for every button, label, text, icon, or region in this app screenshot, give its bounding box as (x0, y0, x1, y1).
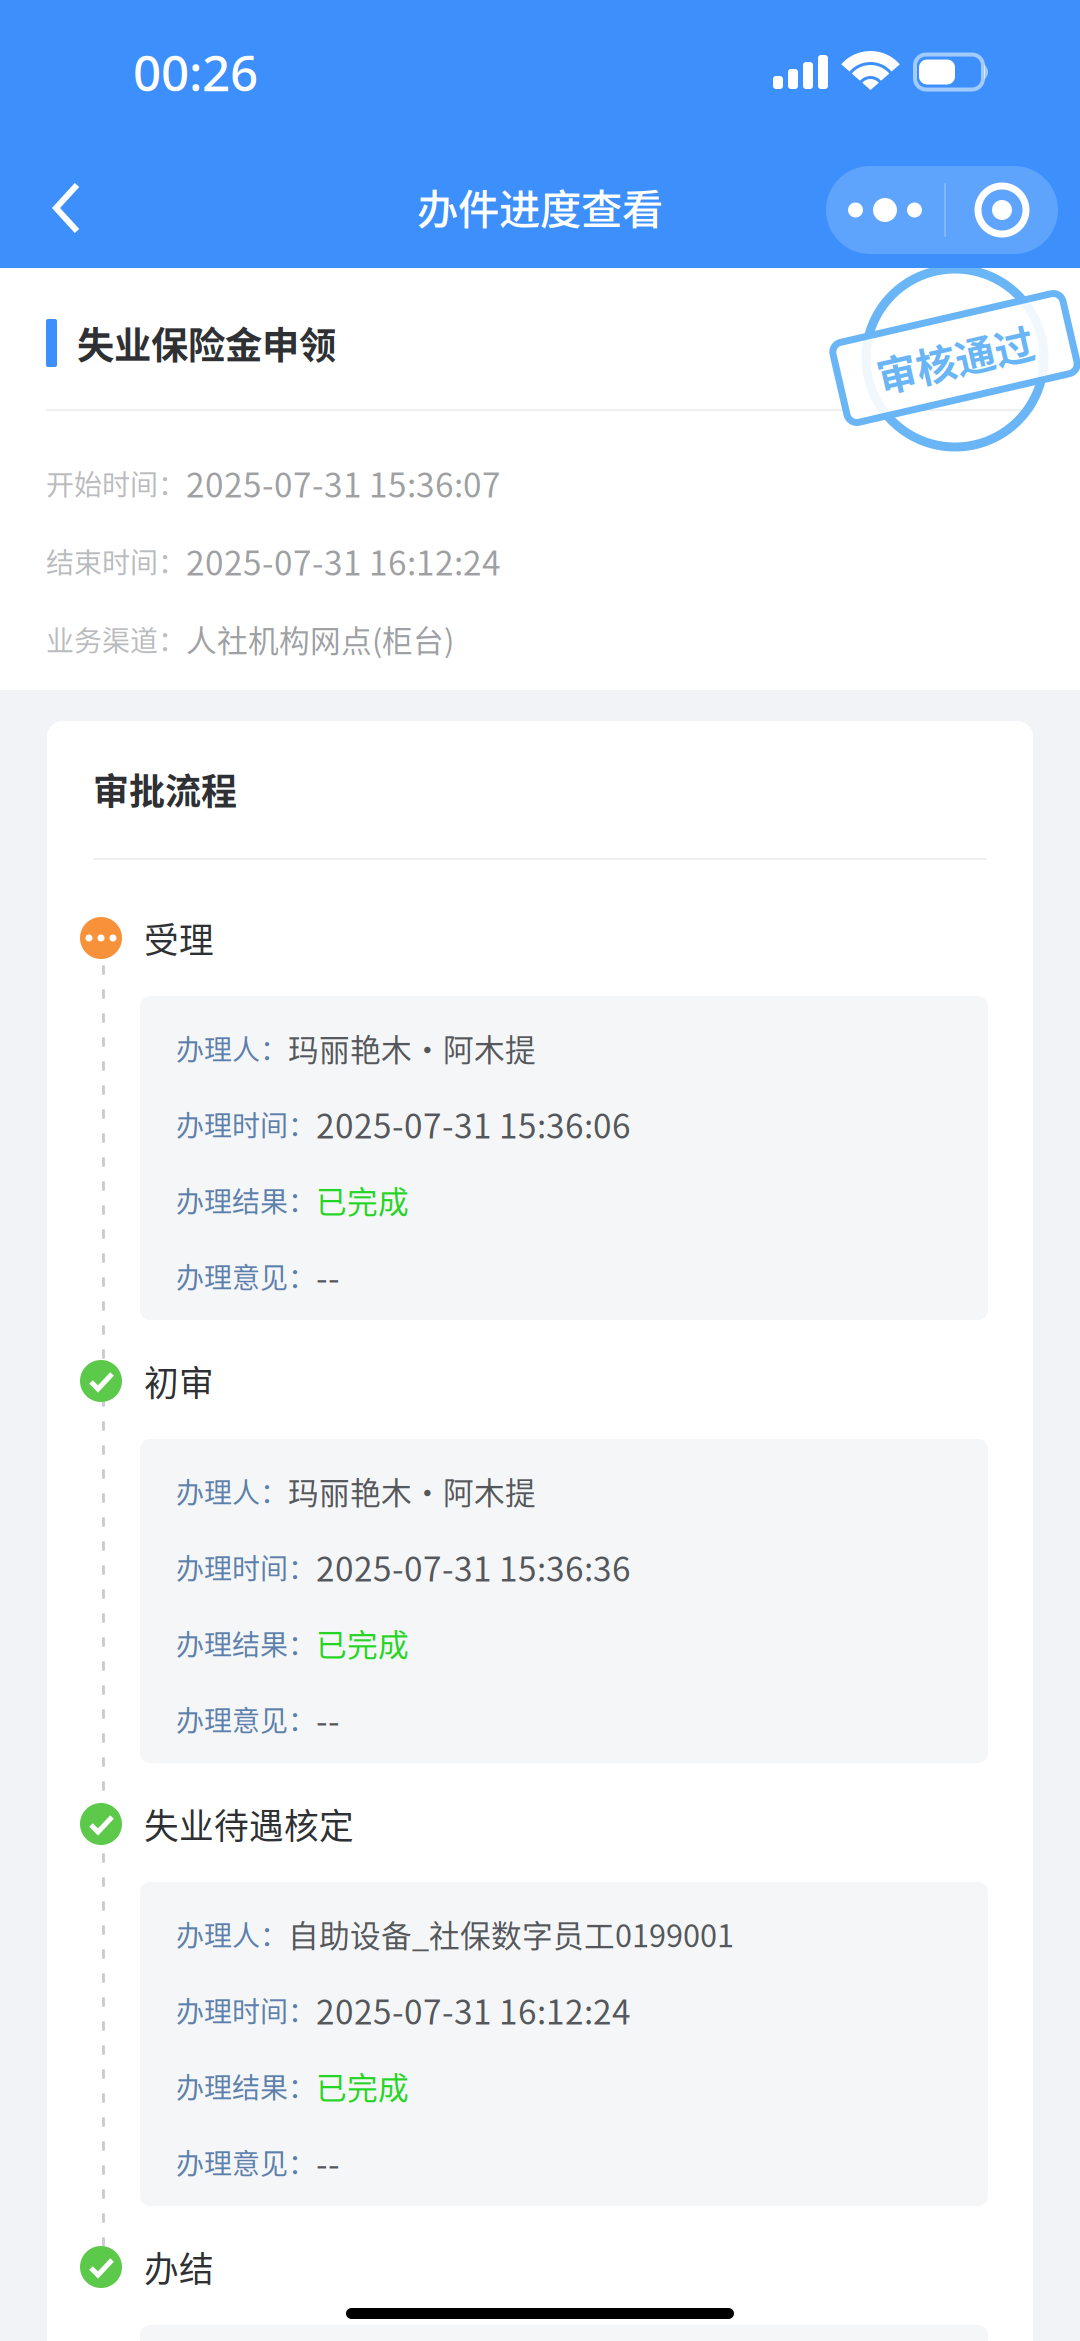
staticText: 办理意见： (176, 1256, 316, 1296)
staticText: -- (316, 2138, 340, 2186)
staticText: 办理结果： (176, 1623, 316, 1663)
staticText: 2025-07-31 15:36:07 (186, 459, 501, 507)
staticText: 办理时间： (176, 1547, 316, 1587)
button[interactable]: 更多 (826, 166, 1058, 254)
staticText: 2025-07-31 16:12:24 (186, 537, 501, 585)
staticText: 开始时间： (46, 463, 186, 503)
staticText: 受理 (144, 913, 214, 963)
staticText: 办理结果： (176, 2066, 316, 2106)
staticText: 办理意见： (176, 1699, 316, 1739)
staticText: 2025-07-31 15:36:36 (316, 1543, 631, 1591)
staticText: -- (316, 1695, 340, 1743)
staticText: 00:26 (133, 39, 258, 105)
staticText: 办理意见： (176, 2142, 316, 2182)
staticText: 办理结果： (176, 1180, 316, 1220)
staticText: 初审 (144, 1356, 214, 1406)
staticText: 2025-07-31 16:12:24 (316, 1986, 631, 2034)
staticText: 已完成 (316, 1178, 409, 1222)
staticText: 办理时间： (176, 1104, 316, 1144)
staticText: 玛丽艳木·阿木提 (288, 1469, 536, 1513)
staticText: 自助设备_社保数字员工0199001 (288, 1912, 734, 1956)
staticText: 办结 (144, 2242, 214, 2292)
staticText: 结束时间： (46, 541, 186, 581)
staticText: 业务渠道： (46, 619, 186, 659)
staticText: 办理时间： (176, 1990, 316, 2030)
staticText: 审批流程 (93, 763, 237, 815)
staticText: 办理人： (176, 1471, 288, 1511)
staticText: 2025-07-31 15:36:06 (316, 1100, 631, 1148)
staticText: 失业保险金申领 (77, 316, 336, 370)
staticText: 人社机构网点(柜台) (186, 617, 454, 661)
staticText: 已完成 (316, 2064, 409, 2108)
staticText: 失业待遇核定 (144, 1799, 354, 1849)
staticText: 玛丽艳木·阿木提 (288, 1026, 536, 1070)
staticText: 办理人： (176, 1028, 288, 1068)
staticText: 审核通过 (875, 329, 1035, 387)
staticText: -- (316, 1252, 340, 1300)
staticText: 已完成 (316, 1621, 409, 1665)
button[interactable]: 返回 (0, 143, 113, 253)
staticText: 办理人： (176, 1914, 288, 1954)
staticText: 办件进度查看 (417, 177, 663, 236)
